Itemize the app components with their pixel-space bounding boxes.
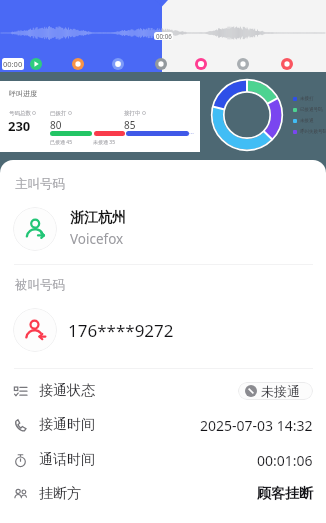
staticText: 80 bbox=[50, 118, 62, 132]
staticText: 被叫号码 bbox=[15, 277, 65, 293]
staticText: 已接通号码 bbox=[300, 107, 323, 113]
button[interactable]: speed bbox=[195, 58, 207, 70]
staticText: 号码总数 bbox=[9, 110, 31, 117]
button[interactable]: stop bbox=[281, 58, 293, 70]
staticText: 230 bbox=[8, 117, 31, 135]
staticText: 已拨打 bbox=[50, 110, 67, 117]
staticText: 未接通 35 bbox=[93, 139, 116, 146]
staticText: 呼叫失败号码 bbox=[300, 129, 326, 135]
button[interactable]: 浙江杭州 bbox=[0, 206, 326, 251]
staticText: 接通时间 bbox=[39, 416, 95, 434]
staticText: 176****9272 bbox=[68, 319, 174, 342]
staticText: 2025-07-03 14:32 bbox=[200, 416, 313, 435]
staticText: 已接通 45 bbox=[50, 139, 73, 146]
staticText: 接通状态 bbox=[39, 382, 95, 400]
staticText: 主叫号码 bbox=[15, 176, 65, 192]
button[interactable]: 通话时间 bbox=[14, 443, 313, 477]
staticText: 00:06 bbox=[156, 32, 172, 40]
button[interactable]: settings bbox=[155, 58, 167, 70]
button[interactable]: 未接通 bbox=[245, 382, 307, 400]
button[interactable]: 挂断方 bbox=[14, 477, 313, 511]
button[interactable]: play bbox=[30, 58, 42, 70]
staticText: 00:00 bbox=[3, 59, 23, 69]
staticText: ... bbox=[189, 128, 194, 136]
button[interactable]: 接通状态 bbox=[14, 374, 313, 408]
staticText: 挂断方 bbox=[39, 485, 81, 503]
button[interactable]: volume bbox=[237, 58, 249, 70]
staticText: 未接通 bbox=[300, 118, 314, 124]
staticText: 未接通 bbox=[261, 383, 300, 399]
staticText: 通话时间 bbox=[39, 451, 95, 469]
staticText: 顾客挂断 bbox=[257, 485, 313, 503]
button[interactable]: rewind bbox=[72, 58, 84, 70]
staticText: Voicefox bbox=[70, 230, 124, 248]
button[interactable]: account bbox=[112, 58, 124, 70]
button[interactable]: 176****9272 bbox=[0, 308, 326, 352]
staticText: 85 bbox=[124, 118, 136, 132]
staticText: 浙江杭州 bbox=[70, 209, 126, 227]
staticText: 接打中 bbox=[124, 110, 141, 117]
staticText: 00:01:06 bbox=[257, 451, 313, 470]
staticText: 呼叫进度 bbox=[9, 89, 37, 98]
button[interactable]: 接通时间 bbox=[14, 408, 313, 442]
staticText: 未拨打 bbox=[300, 96, 314, 102]
